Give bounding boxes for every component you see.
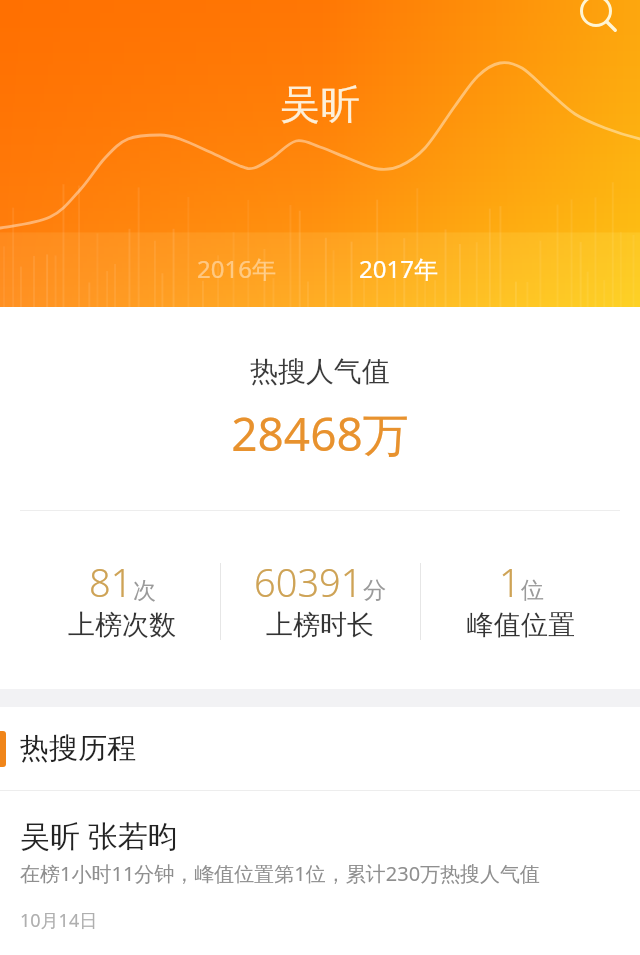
staticText: 热搜历程: [20, 730, 136, 767]
staticText: 峰值位置: [467, 608, 575, 642]
button[interactable]: Search: [570, 0, 626, 38]
staticText: 吴昕: [280, 79, 360, 129]
staticText: 位: [521, 576, 544, 605]
button[interactable]: 2016年: [187, 246, 286, 291]
staticText: 10月14日: [20, 908, 98, 933]
button[interactable]: 1: [420, 556, 622, 642]
button[interactable]: 2017年: [349, 246, 448, 291]
staticText: 2017年: [359, 252, 438, 285]
staticText: 81: [89, 556, 133, 608]
staticText: 热搜人气值: [0, 354, 640, 389]
button[interactable]: 81: [24, 556, 220, 642]
staticText: 吴昕 张若昀: [20, 815, 178, 856]
staticText: 在榜1小时11分钟，峰值位置第1位，累计230万热搜人气值: [20, 860, 541, 887]
staticText: 次: [133, 576, 156, 605]
staticText: 2016年: [197, 252, 276, 285]
staticText: 60391: [254, 556, 363, 608]
staticText: 分: [363, 576, 386, 605]
button[interactable]: 热搜历程: [0, 707, 640, 790]
staticText: 上榜次数: [68, 608, 176, 642]
staticText: 1: [499, 556, 521, 608]
button[interactable]: 吴昕 张若昀: [0, 791, 640, 933]
staticText: 上榜时长: [266, 608, 374, 642]
staticText: 28468万: [0, 402, 640, 465]
button[interactable]: 60391: [220, 556, 420, 642]
